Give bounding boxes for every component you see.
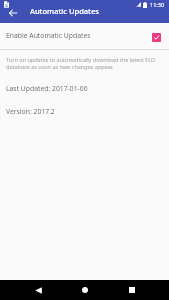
staticText: Automatic Updates (30, 6, 99, 16)
staticText: Enable Automatic Updates (6, 31, 91, 40)
button[interactable]: Home (75, 280, 95, 300)
staticText: Version: 2017.2 (6, 107, 55, 116)
button[interactable]: Recent apps (122, 280, 142, 300)
button[interactable]: Back (27, 280, 47, 300)
button[interactable]: Navigate up (2, 2, 23, 23)
staticText: Last Updated: 2017-01-06 (6, 84, 88, 93)
staticText: 11:30 (150, 1, 165, 8)
button[interactable]: Enable Automatic Updates (0, 23, 169, 48)
staticText: Turn on updates to automatically downloa… (6, 56, 164, 70)
